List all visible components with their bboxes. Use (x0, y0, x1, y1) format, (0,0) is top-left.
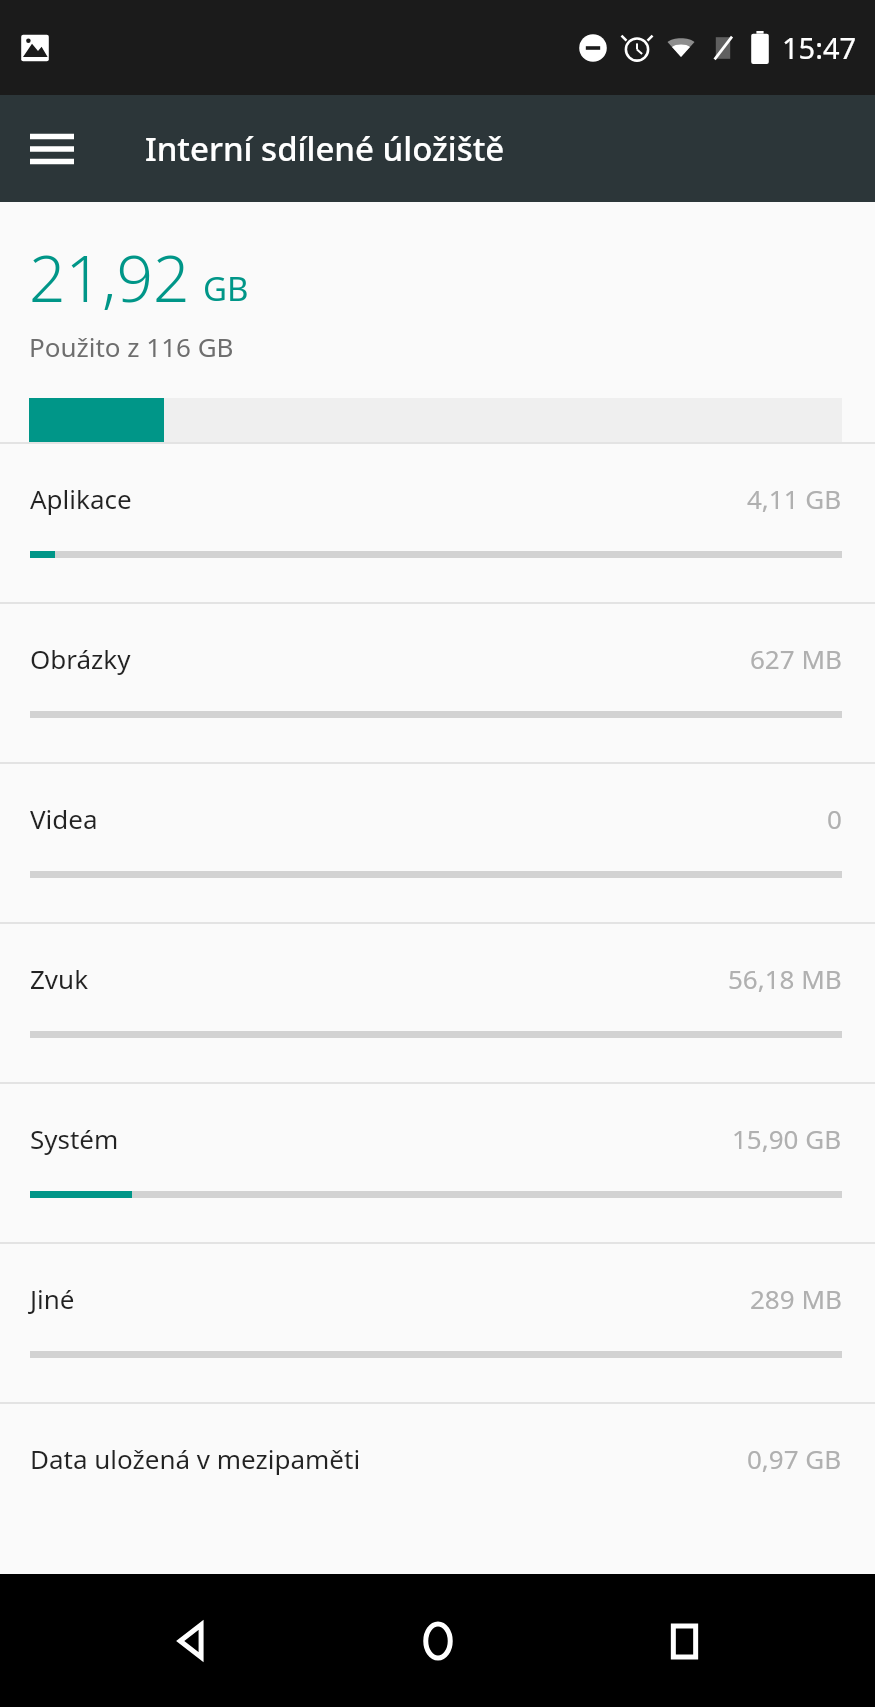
staticText: GB (203, 266, 249, 311)
button[interactable]: Obrázky (0, 604, 875, 762)
staticText: Data uložená v mezipaměti (30, 1441, 747, 1476)
button[interactable]: Videa (0, 764, 875, 922)
staticText: 627 MB (750, 641, 842, 676)
button[interactable]: Systém (0, 1084, 875, 1242)
button[interactable]: Open navigation drawer (16, 113, 88, 185)
button[interactable]: Home (383, 1586, 493, 1696)
staticText: 15,90 GB (732, 1121, 842, 1156)
button[interactable]: Zvuk (0, 924, 875, 1082)
staticText: 56,18 MB (728, 961, 842, 996)
button[interactable]: Recent apps (629, 1586, 739, 1696)
staticText: Interní sdílené úložiště (145, 126, 505, 171)
staticText: Systém (30, 1121, 732, 1156)
staticText: 289 MB (750, 1281, 842, 1316)
staticText: 0 (827, 801, 842, 836)
staticText: Zvuk (30, 961, 728, 996)
staticText: Použito z 116 GB (29, 329, 234, 364)
button[interactable]: Aplikace (0, 444, 875, 602)
staticText: 4,11 GB (747, 481, 842, 516)
staticText: 15:47 (782, 28, 857, 67)
button[interactable]: Jiné (0, 1244, 875, 1402)
staticText: 21,92 (29, 234, 190, 321)
button[interactable]: Data uložená v mezipaměti (0, 1404, 875, 1564)
staticText: Videa (30, 801, 827, 836)
staticText: Obrázky (30, 641, 750, 676)
button[interactable]: Back (136, 1586, 246, 1696)
staticText: Aplikace (30, 481, 747, 516)
staticText: 0,97 GB (747, 1441, 842, 1476)
staticText: Jiné (30, 1281, 750, 1316)
